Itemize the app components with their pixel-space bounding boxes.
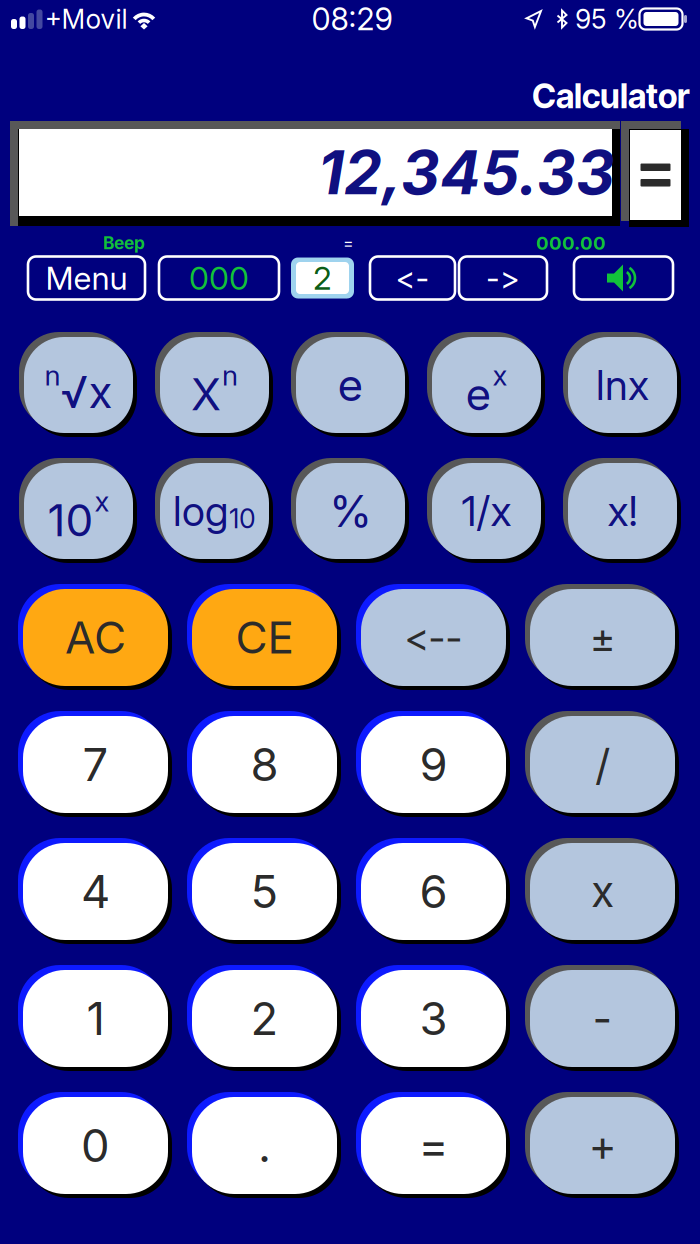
staticText: 12,345.33 (318, 136, 615, 209)
button[interactable]: Back (0, 0, 700, 1244)
button[interactable]: Calculator (0, 0, 700, 1244)
button[interactable]: + (0, 0, 700, 1244)
button[interactable]: % (0, 0, 700, 1244)
staticText: Menu (45, 259, 127, 297)
staticText: - (415, 259, 429, 296)
staticText: √x (60, 365, 112, 419)
staticText: 1 (86, 991, 104, 1046)
staticText: % (329, 484, 372, 538)
staticText: = (343, 233, 354, 253)
staticText: 8 (250, 737, 278, 792)
staticText: +Movil (44, 3, 127, 35)
staticText: X (191, 368, 221, 421)
staticText: = (418, 1118, 448, 1173)
button[interactable]: Forward (0, 0, 700, 1244)
staticText: 10 (229, 502, 256, 535)
staticText: x (492, 358, 507, 392)
staticText: < (395, 259, 415, 296)
button[interactable]: 5 (0, 0, 700, 1244)
staticText: 08:29 (311, 0, 392, 37)
button[interactable]: ± (0, 0, 700, 1244)
button[interactable]: x (0, 0, 700, 1244)
staticText: x (94, 484, 109, 518)
staticText: + (588, 1120, 616, 1171)
button[interactable]: < (0, 0, 700, 1244)
button[interactable]: 000 (0, 0, 700, 1244)
staticText: 95 % (575, 3, 639, 35)
staticText: 4 (81, 864, 110, 919)
button[interactable]: lnx (0, 0, 700, 1244)
button[interactable]: 2 (0, 0, 700, 1244)
button[interactable]: 7 (0, 0, 700, 1244)
staticText: 1/x (461, 486, 511, 536)
button[interactable]: - (0, 0, 700, 1244)
staticText: / (595, 739, 610, 790)
staticText: n (44, 358, 60, 392)
staticText: x! (607, 486, 637, 536)
button[interactable]: Menu (0, 0, 700, 1244)
staticText: > (500, 259, 520, 296)
button[interactable]: = (0, 0, 700, 1244)
staticText: - (428, 614, 445, 661)
button[interactable]: 0 (0, 0, 700, 1244)
staticText: log (173, 486, 228, 536)
staticText: n (222, 358, 238, 392)
staticText: 9 (419, 737, 447, 792)
staticText: 5 (250, 864, 278, 919)
button[interactable]: 4 (0, 0, 700, 1244)
button[interactable]: x! (0, 0, 700, 1244)
button[interactable]: log (0, 0, 700, 1244)
staticText: 7 (82, 737, 108, 792)
button[interactable]: 8 (0, 0, 700, 1244)
button[interactable]: e (0, 0, 700, 1244)
staticText: - (486, 259, 500, 296)
button[interactable]: Sound (0, 0, 700, 1244)
staticText: Calculator (532, 76, 690, 116)
staticText: Beep (103, 232, 145, 253)
staticText: CE (235, 611, 293, 664)
button[interactable]: / (0, 0, 700, 1244)
staticText: - (445, 614, 462, 661)
staticText: < (404, 614, 428, 661)
staticText: e (337, 358, 363, 412)
staticText: ± (590, 613, 615, 662)
staticText: 0 (81, 1118, 110, 1173)
button[interactable]: 1/x (0, 0, 700, 1244)
staticText: e (465, 368, 491, 421)
button[interactable]: 10 (0, 0, 700, 1244)
button[interactable]: 3 (0, 0, 700, 1244)
staticText: 6 (419, 864, 447, 919)
button[interactable]: 2 (0, 0, 700, 1244)
button[interactable]: . (0, 0, 700, 1244)
button[interactable]: CE (0, 0, 700, 1244)
staticText: x (591, 866, 614, 917)
staticText: 2 (313, 259, 332, 297)
staticText: 000.00 (536, 232, 606, 254)
button[interactable]: 9 (0, 0, 700, 1244)
staticText: 10 (47, 494, 93, 547)
button[interactable]: Equals (0, 0, 70, 110)
button[interactable]: X (0, 0, 700, 1244)
staticText: lnx (596, 360, 649, 410)
button[interactable]: AC (0, 0, 700, 1244)
staticText: AC (65, 611, 126, 664)
staticText: 2 (250, 991, 278, 1046)
button[interactable]: 6 (0, 0, 700, 1244)
staticText: - (592, 993, 612, 1044)
button[interactable]: e (0, 0, 700, 1244)
button[interactable]: 1 (0, 0, 700, 1244)
staticText: . (258, 1118, 271, 1173)
button[interactable]: n (0, 0, 700, 1244)
staticText: 3 (419, 991, 447, 1046)
staticText: 000 (189, 259, 249, 297)
